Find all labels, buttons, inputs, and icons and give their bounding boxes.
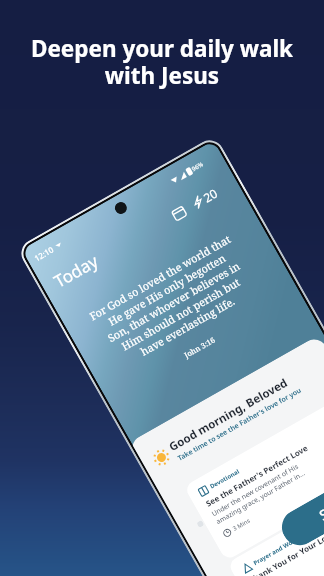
staticText: See the Father's Perfect Love [203, 442, 310, 509]
staticText: John 3:16 [104, 288, 298, 404]
button[interactable]: Calendar [169, 203, 188, 222]
button[interactable]: Devotional [184, 391, 324, 561]
staticText: Today [50, 249, 103, 293]
staticText: Take time to see the Father's love for y… [176, 385, 304, 464]
staticText: Thank You for Your Love [247, 528, 324, 576]
staticText: For God so loved the world that He gave … [64, 217, 287, 385]
button[interactable]: Start [275, 464, 324, 552]
staticText: 3 Mins [231, 516, 252, 533]
staticText: Good morning, Beloved [166, 374, 291, 455]
staticText: Prayer and Worship [252, 531, 307, 567]
staticText: 20 [200, 185, 220, 205]
staticText: Start [315, 492, 324, 524]
staticText: Devotional [208, 467, 241, 491]
staticText: 12:10 [32, 243, 56, 263]
button[interactable]: Prayer and Worship [227, 467, 324, 576]
button[interactable]: Streak 20 [189, 185, 220, 212]
staticText: Deepen your daily walk with Jesus [0, 33, 324, 91]
staticText: 96% [190, 160, 205, 173]
staticText: Under the new covenant of His amazing gr… [210, 461, 307, 526]
